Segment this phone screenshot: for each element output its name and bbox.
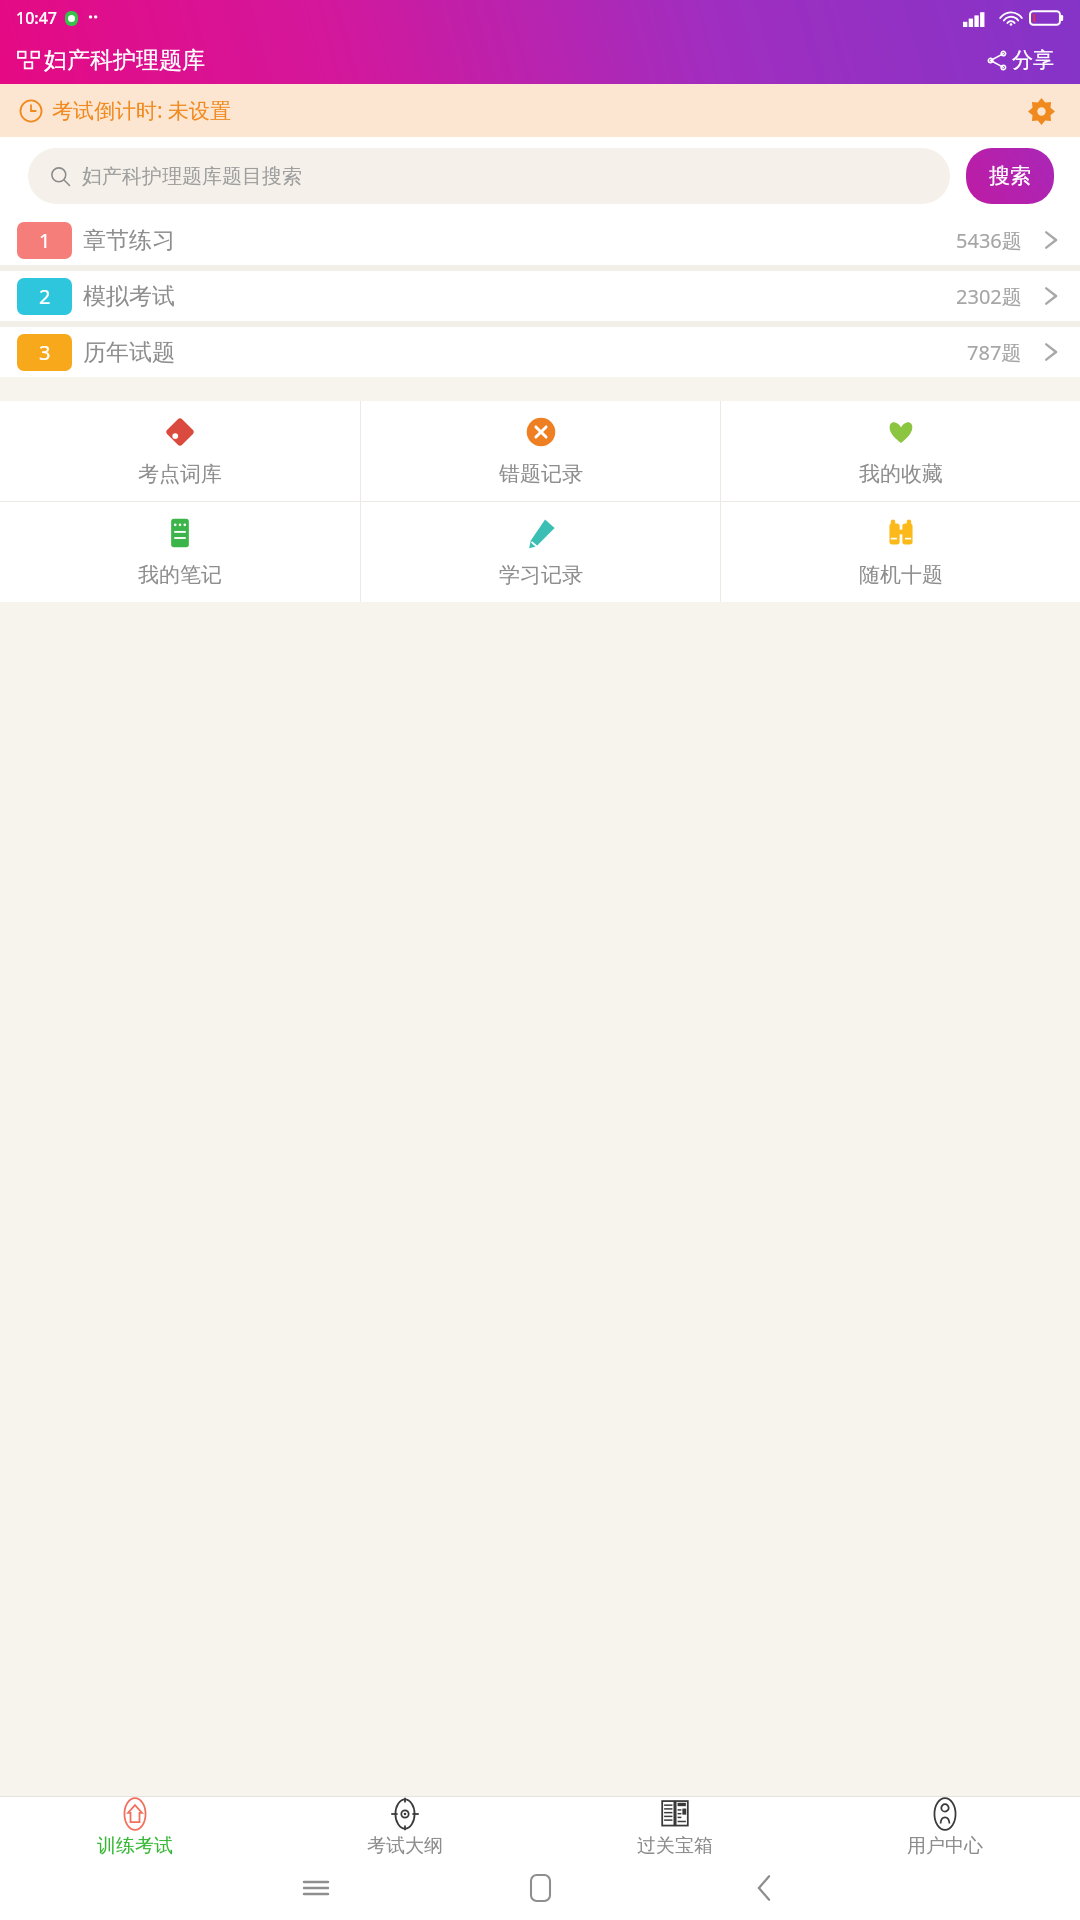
staticText: 训练考试 xyxy=(97,1834,173,1855)
staticText: 章节练习 xyxy=(83,226,175,255)
staticText: 我的笔记 xyxy=(138,562,222,588)
button[interactable]: 妇产科护理题库题目搜索 xyxy=(28,148,950,204)
staticText: 过关宝箱 xyxy=(637,1834,713,1855)
staticText: 学习记录 xyxy=(499,562,583,588)
button[interactable]: 用户中心 xyxy=(810,1797,1080,1855)
button[interactable]: 考试大纲 xyxy=(270,1797,540,1855)
button[interactable]: 错题记录 xyxy=(361,401,720,501)
staticText: 模拟考试 xyxy=(83,282,175,311)
button[interactable]: 搜索 xyxy=(966,148,1054,204)
button[interactable]: 训练考试 xyxy=(0,1797,270,1855)
button[interactable]: 学习记录 xyxy=(361,502,720,602)
staticText: 考点词库 xyxy=(138,461,222,487)
button[interactable]: 随机十题 xyxy=(721,502,1080,602)
staticText: 787题 xyxy=(967,339,1022,366)
staticText: 历年试题 xyxy=(83,338,175,367)
button[interactable]: Recents xyxy=(204,1855,428,1920)
staticText: 妇产科护理题库 xyxy=(44,46,205,75)
button[interactable]: 分享 xyxy=(983,41,1058,79)
staticText: 分享 xyxy=(1012,47,1054,73)
staticText: 考试大纲 xyxy=(367,1834,443,1855)
button[interactable]: 1 xyxy=(0,215,1080,265)
button[interactable]: 3 xyxy=(0,327,1080,377)
staticText: 搜索 xyxy=(989,163,1031,189)
staticText: 错题记录 xyxy=(499,461,583,487)
staticText: 随机十题 xyxy=(859,562,943,588)
button[interactable]: 考试倒计时: 未设置 xyxy=(0,84,1080,137)
staticText: 用户中心 xyxy=(907,1834,983,1855)
button[interactable]: Settings xyxy=(1021,91,1061,131)
staticText: 妇产科护理题库题目搜索 xyxy=(82,164,302,189)
staticText: 我的收藏 xyxy=(859,461,943,487)
button[interactable]: 2 xyxy=(0,271,1080,321)
button[interactable]: 我的收藏 xyxy=(721,401,1080,501)
staticText: 考试倒计时: 未设置 xyxy=(52,96,232,125)
button[interactable]: 考点词库 xyxy=(0,401,360,501)
button[interactable]: 过关宝箱 xyxy=(540,1797,810,1855)
staticText: 10:47 xyxy=(16,7,57,29)
staticText: 3 xyxy=(39,339,51,366)
button[interactable]: Back xyxy=(652,1855,876,1920)
button[interactable]: 我的笔记 xyxy=(0,502,360,602)
staticText: 5436题 xyxy=(956,227,1022,254)
button[interactable]: Home xyxy=(428,1855,652,1920)
staticText: 2302题 xyxy=(956,283,1022,310)
staticText: 1 xyxy=(39,227,51,254)
staticText: 2 xyxy=(39,283,51,310)
